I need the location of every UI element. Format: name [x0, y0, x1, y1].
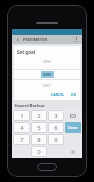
button[interactable]: 7: [13, 134, 30, 145]
staticText: 3: [54, 112, 58, 120]
staticText: PEDOMETER: [23, 37, 47, 42]
button[interactable]: More options: [73, 36, 80, 43]
button[interactable]: 6: [48, 122, 64, 133]
staticText: 0: [37, 148, 41, 156]
staticText: 4999: [43, 59, 52, 64]
button[interactable]: CANCEL: [49, 91, 67, 98]
staticText: Export/Backup: [15, 103, 45, 107]
staticText: 4: [20, 124, 24, 132]
button[interactable]: 0: [31, 146, 47, 157]
staticText: -: [72, 137, 74, 142]
button[interactable]: Done: [65, 122, 81, 133]
staticText: OK: [71, 92, 76, 97]
button[interactable]: Backspace: [65, 110, 81, 121]
staticText: CANCEL: [51, 92, 65, 97]
button[interactable]: 1: [13, 110, 30, 121]
button[interactable]: 5000: [43, 72, 52, 77]
button[interactable]: Keyboard settings: [65, 146, 81, 157]
button[interactable]: 4: [13, 122, 30, 133]
staticText: 6: [54, 124, 58, 132]
staticText: 9: [54, 136, 58, 144]
button[interactable]: 9: [48, 134, 64, 145]
button[interactable]: Home: [37, 163, 57, 171]
button[interactable]: OK: [69, 91, 78, 98]
staticText: 2: [37, 112, 41, 120]
staticText: 5: [37, 124, 41, 132]
staticText: Set goal: [17, 49, 35, 55]
staticText: 8: [37, 136, 41, 144]
button[interactable]: Back: [14, 36, 21, 43]
button[interactable]: 2: [31, 110, 47, 121]
button[interactable]: 5: [31, 122, 47, 133]
staticText: Done: [68, 125, 78, 130]
button[interactable]: 8: [31, 134, 47, 145]
staticText: 1: [20, 112, 24, 120]
staticText: 5001: [43, 83, 52, 88]
staticText: 7: [20, 136, 24, 144]
staticText: 5000: [43, 72, 52, 77]
button[interactable]: 3: [48, 110, 64, 121]
